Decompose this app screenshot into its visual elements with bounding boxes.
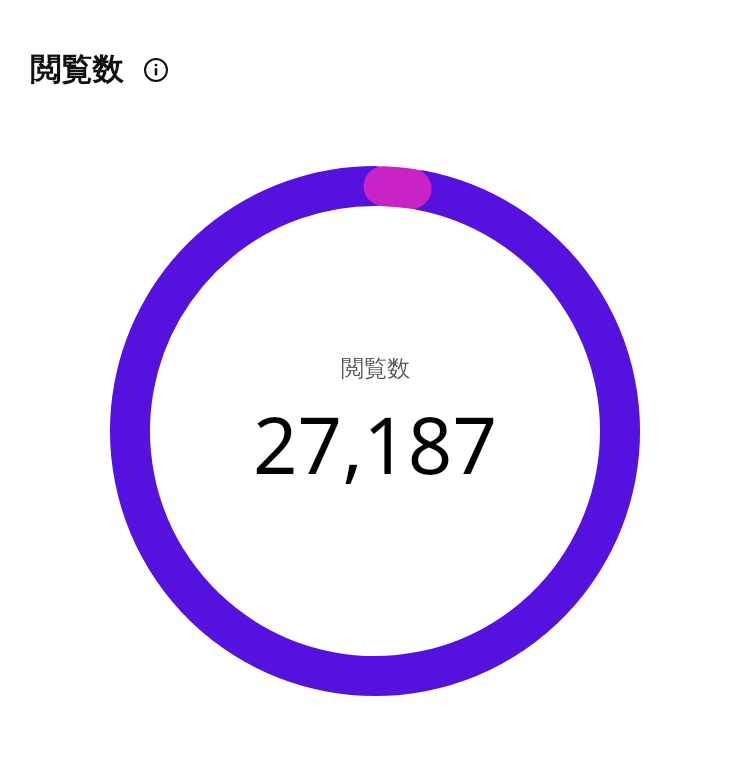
staticText: 閲覧数	[341, 354, 410, 383]
staticText: 閲覧数	[30, 50, 123, 89]
button[interactable]: 詳細情報	[141, 55, 171, 85]
staticText: 27,187	[253, 391, 497, 497]
